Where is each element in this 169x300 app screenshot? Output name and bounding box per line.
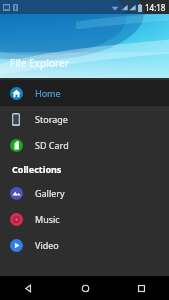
staticText: Collections (12, 163, 62, 175)
button[interactable]: Recents (113, 276, 169, 300)
other: Video (9, 238, 23, 252)
button[interactable]: Home (0, 80, 169, 106)
button[interactable]: Back (0, 276, 57, 300)
staticText: Storage (35, 113, 68, 125)
staticText: File Explorer (10, 56, 70, 70)
button[interactable]: Storage (0, 106, 169, 132)
staticText: Home (35, 87, 61, 99)
other: SD Card (9, 138, 23, 152)
button[interactable]: SD Card (0, 132, 169, 158)
staticText: Gallery (35, 187, 65, 199)
other: Gallery (9, 186, 23, 200)
button[interactable]: Home (57, 276, 113, 300)
other: Home (9, 86, 23, 100)
other: Music (9, 212, 23, 226)
staticText: Video (35, 239, 59, 251)
other: Storage (9, 112, 23, 126)
button[interactable]: Music (0, 206, 169, 232)
staticText: Music (35, 213, 60, 225)
button[interactable]: Gallery (0, 180, 169, 206)
staticText: SD Card (35, 139, 69, 151)
staticText: 14:18 (145, 2, 166, 13)
button[interactable]: Video (0, 232, 169, 258)
